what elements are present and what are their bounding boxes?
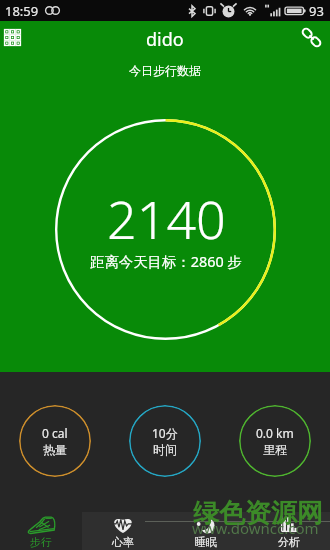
button[interactable]: 0 cal	[19, 405, 91, 477]
staticText: 93	[309, 2, 324, 20]
button[interactable]: Link device	[296, 22, 330, 56]
staticText: 步行	[30, 535, 52, 549]
button[interactable]: 分析	[247, 512, 330, 550]
staticText: 时间	[153, 442, 177, 457]
staticText: 2140	[107, 183, 226, 254]
staticText: 热量	[43, 442, 67, 457]
button[interactable]: 睡眠	[164, 512, 247, 550]
button[interactable]: 心率	[82, 512, 164, 550]
staticText: 0.0 km	[256, 425, 294, 441]
staticText: 里程	[263, 442, 287, 457]
staticText: 今日步行数据	[129, 63, 201, 78]
staticText: dido	[146, 27, 184, 52]
staticText: 距离今天目标：2860 步	[90, 252, 242, 272]
button[interactable]: Apps	[0, 22, 34, 56]
staticText: 分析	[278, 535, 300, 549]
staticText: 18:59	[5, 2, 39, 20]
staticText: 心率	[112, 535, 134, 549]
staticText: www.downcc.com	[192, 518, 319, 538]
button[interactable]: 10分	[129, 405, 201, 477]
button[interactable]: 0.0 km	[239, 405, 311, 477]
staticText: 睡眠	[195, 535, 217, 549]
staticText: 10分	[152, 425, 178, 441]
button[interactable]: 步行	[0, 512, 82, 550]
staticText: 0 cal	[42, 425, 68, 441]
staticText: 绿色资源网	[193, 497, 323, 530]
